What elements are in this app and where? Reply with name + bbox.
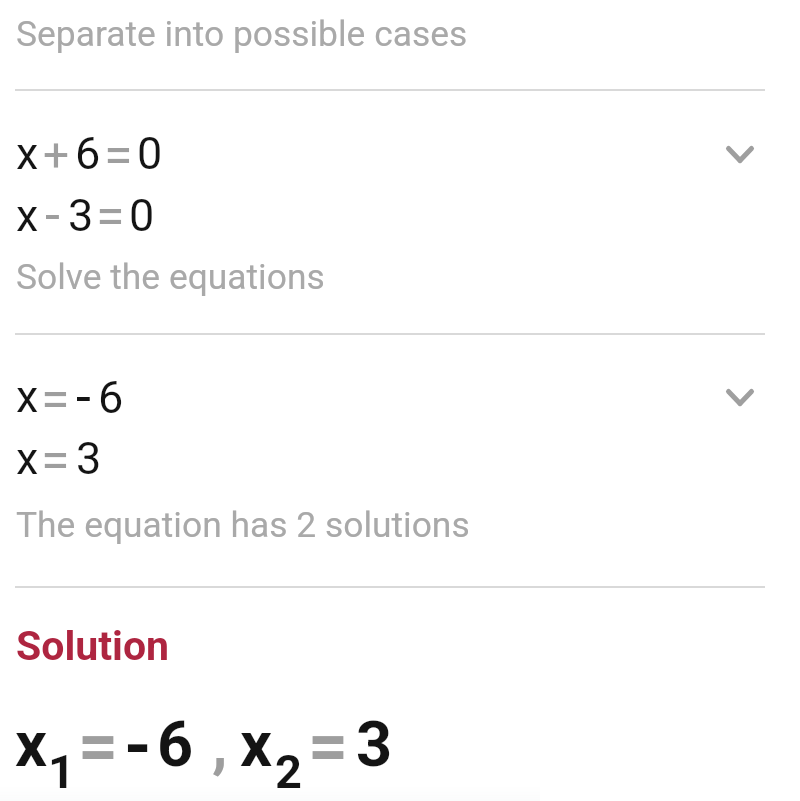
staticText: 6 xyxy=(98,371,124,424)
staticText: x xyxy=(16,189,39,242)
staticText: x xyxy=(16,432,39,485)
staticText: - xyxy=(45,183,60,246)
staticText: Separate into possible cases xyxy=(16,13,468,54)
button[interactable]: Separate into possible cases step xyxy=(0,90,800,334)
staticText: 0 xyxy=(129,189,155,242)
staticText: = xyxy=(41,430,70,491)
staticText: x xyxy=(240,708,273,782)
staticText: = xyxy=(96,186,125,247)
staticText: - xyxy=(76,365,91,428)
button[interactable]: Solve the equations step xyxy=(0,334,800,586)
button[interactable]: Expand step xyxy=(704,361,776,433)
staticText: + xyxy=(43,128,70,182)
staticText: 2 xyxy=(275,744,302,799)
button[interactable]: Expand step xyxy=(704,118,776,190)
staticText: 0 xyxy=(137,127,163,180)
staticText: , xyxy=(212,708,228,782)
staticText: x xyxy=(16,127,39,180)
staticText: Solution xyxy=(16,622,170,670)
staticText: 1 xyxy=(48,744,75,799)
staticText: = xyxy=(78,705,119,787)
staticText: x xyxy=(15,708,48,782)
staticText: 3 xyxy=(356,708,393,782)
staticText: Solve the equations xyxy=(16,256,325,297)
staticText: 6 xyxy=(157,708,194,782)
staticText: = xyxy=(104,125,133,186)
staticText: x xyxy=(16,370,39,423)
staticText: = xyxy=(308,705,349,787)
staticText: 3 xyxy=(76,432,102,485)
staticText: = xyxy=(41,369,70,430)
staticText: - xyxy=(124,705,152,787)
staticText: The equation has 2 solutions xyxy=(16,504,470,545)
staticText: 6 xyxy=(75,127,101,180)
staticText: 3 xyxy=(68,189,94,242)
